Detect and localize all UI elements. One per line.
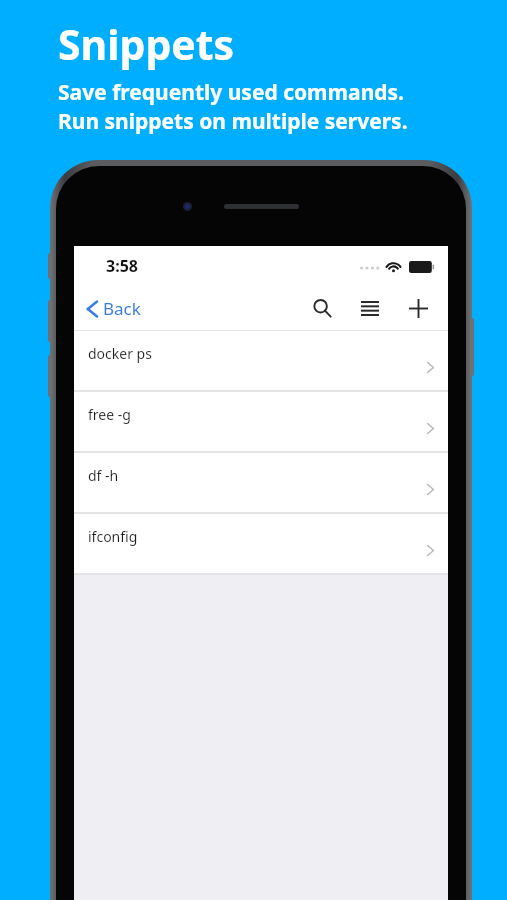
staticText: Run snippets on multiple servers.: [58, 107, 408, 136]
button[interactable]: Back: [82, 291, 145, 326]
button[interactable]: List: [352, 290, 388, 326]
staticText: free -g: [88, 405, 131, 424]
staticText: docker ps: [88, 344, 152, 363]
button[interactable]: ifconfig: [74, 514, 448, 575]
staticText: Snippets: [58, 16, 235, 72]
staticText: Save frequently used commands.: [58, 78, 405, 107]
button[interactable]: Search: [304, 290, 340, 326]
button[interactable]: Add: [400, 290, 436, 326]
button[interactable]: free -g: [74, 392, 448, 453]
staticText: ifconfig: [88, 527, 138, 546]
button[interactable]: df -h: [74, 453, 448, 514]
staticText: df -h: [88, 466, 119, 485]
staticText: Back: [103, 297, 141, 320]
staticText: 3:58: [106, 255, 138, 277]
button[interactable]: docker ps: [74, 331, 448, 392]
